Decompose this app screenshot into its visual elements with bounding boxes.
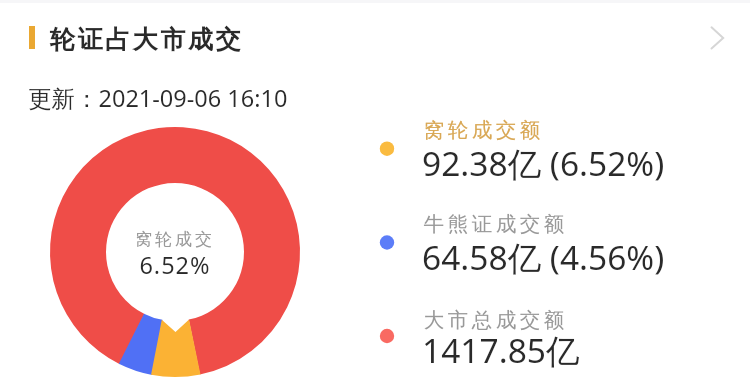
staticText: 1417.85亿 — [422, 327, 580, 373]
staticText: 6.52% — [139, 249, 211, 281]
button[interactable]: 大市总成交额 — [366, 301, 706, 373]
staticText: 92.38亿 (6.52%) — [422, 140, 665, 186]
staticText: 窝轮成交额 — [422, 117, 542, 143]
button[interactable]: 牛熊证成交额 — [366, 208, 706, 280]
button[interactable]: View details — [700, 14, 746, 60]
staticText: 轮证占大市成交 — [50, 24, 244, 55]
staticText: 牛熊证成交额 — [422, 211, 566, 237]
staticText: 窝轮成交 — [135, 229, 215, 250]
other: Donut chart: 窝轮成交 6.52% — [0, 0, 750, 383]
button[interactable]: 窝轮成交额 — [366, 114, 706, 186]
staticText: 大市总成交额 — [422, 307, 566, 333]
staticText: 更新：2021-09-06 16:10 — [28, 82, 288, 114]
button[interactable]: 轮证占大市成交 — [0, 6, 750, 68]
staticText: 64.58亿 (4.56%) — [422, 234, 665, 280]
